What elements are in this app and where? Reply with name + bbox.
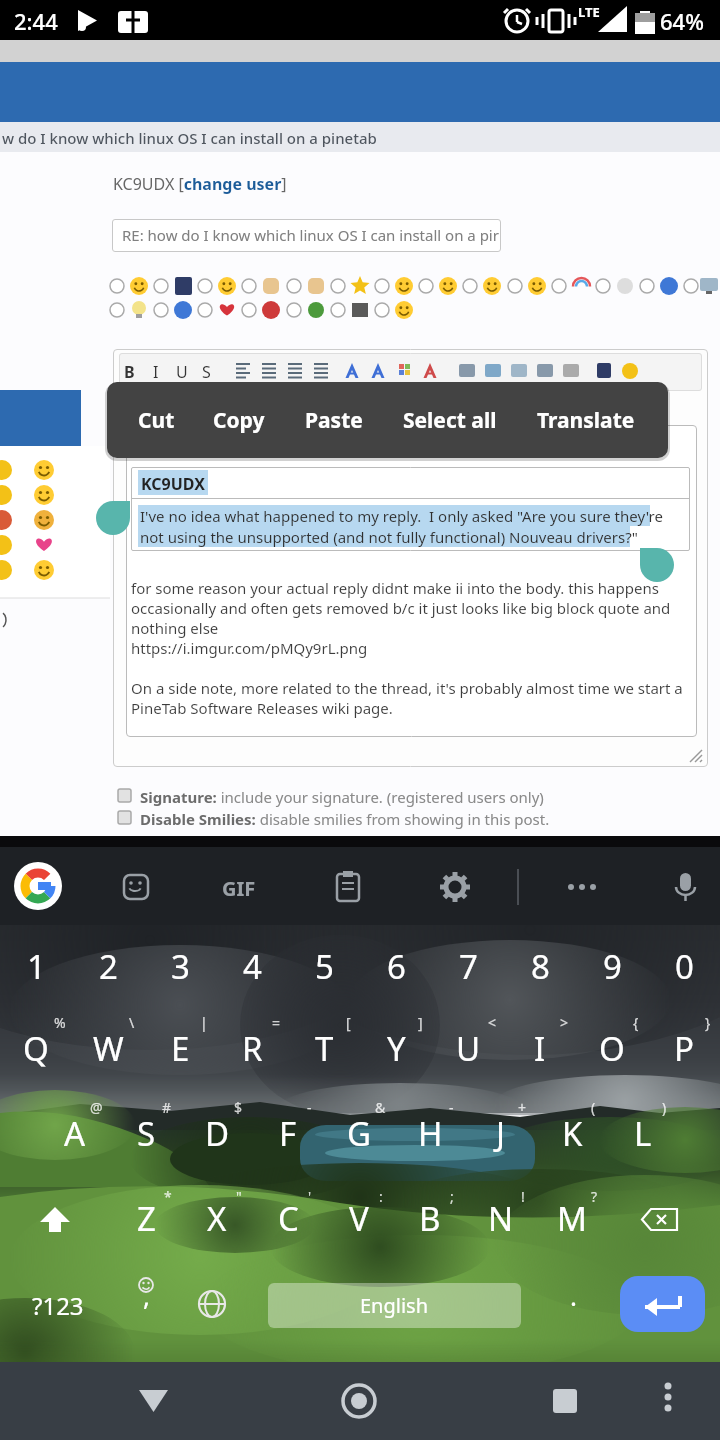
staticText: Q — [23, 1026, 49, 1071]
button[interactable]: Z — [110, 1192, 182, 1244]
staticText: Select all — [403, 406, 497, 435]
button[interactable]: D — [181, 1107, 253, 1159]
button[interactable]: - — [415, 1081, 487, 1133]
staticText: P — [674, 1026, 694, 1071]
button[interactable]: RE: how do I know which linux OS I can i… — [112, 219, 501, 252]
button[interactable]: @ — [60, 1081, 132, 1133]
button[interactable]: N — [465, 1192, 537, 1244]
button[interactable]: 7 — [432, 940, 504, 992]
staticText: KC9UDX [change user] — [113, 173, 287, 195]
staticText: Cut — [138, 406, 175, 435]
button[interactable]: Paste — [305, 406, 363, 435]
button[interactable]: English — [268, 1283, 521, 1328]
button[interactable]: % — [24, 996, 96, 1048]
button[interactable]: : — [345, 1170, 417, 1222]
button[interactable]: H — [394, 1107, 466, 1159]
button[interactable]: & — [344, 1081, 416, 1133]
button[interactable]: F — [252, 1107, 324, 1159]
staticText: not using the unsupported (and not fully… — [140, 527, 638, 547]
button[interactable]: 0 — [648, 940, 720, 992]
button[interactable]: M — [536, 1192, 608, 1244]
button[interactable]: \ — [96, 996, 168, 1048]
staticText: H — [418, 1111, 443, 1156]
button[interactable] — [331, 1373, 387, 1429]
button[interactable]: W — [72, 1022, 144, 1074]
button[interactable]: T — [288, 1022, 360, 1074]
staticText: Z — [137, 1196, 156, 1241]
button[interactable]: 1 — [0, 940, 72, 992]
button[interactable]: ? — [558, 1170, 630, 1222]
staticText: E — [171, 1026, 190, 1071]
button[interactable]: I — [504, 1022, 576, 1074]
staticText: " — [236, 1187, 242, 1206]
staticText: } — [705, 1013, 711, 1032]
button[interactable] — [125, 1376, 181, 1426]
button[interactable]: " — [203, 1170, 275, 1222]
staticText: I — [153, 361, 159, 383]
button[interactable]: Copy — [213, 406, 265, 435]
button[interactable]: ; — [416, 1170, 488, 1222]
button[interactable]: , — [110, 1269, 182, 1321]
button[interactable]: B — [394, 1192, 466, 1244]
button[interactable]: ! — [487, 1170, 559, 1222]
button[interactable]: 3 — [144, 940, 216, 992]
button[interactable]: [ — [312, 996, 384, 1048]
button[interactable]: } — [672, 996, 720, 1048]
button[interactable]: Translate — [537, 406, 635, 435]
button[interactable]: ) — [628, 1081, 700, 1133]
button[interactable]: X — [181, 1192, 253, 1244]
button[interactable]: 4 — [216, 940, 288, 992]
button[interactable]: ( — [557, 1081, 629, 1133]
button[interactable]: L — [607, 1107, 679, 1159]
button[interactable]: < — [456, 996, 528, 1048]
button[interactable]: 2 — [72, 940, 144, 992]
button[interactable]: ] — [384, 996, 456, 1048]
button[interactable]: Y — [360, 1022, 432, 1074]
button[interactable]: ?123 — [22, 1279, 94, 1331]
staticText: O — [599, 1026, 625, 1071]
button[interactable]: $ — [202, 1081, 274, 1133]
staticText: ' — [308, 1187, 312, 1206]
button[interactable]: E — [144, 1022, 216, 1074]
button[interactable]: Q — [0, 1022, 72, 1074]
button[interactable]: 8 — [504, 940, 576, 992]
staticText: LTE — [578, 3, 600, 21]
button[interactable] — [126, 425, 697, 737]
button[interactable]: S — [110, 1107, 182, 1159]
staticText: for some reason your actual reply didnt … — [131, 578, 683, 718]
button[interactable]: C — [252, 1192, 324, 1244]
button[interactable]: Cut — [138, 406, 175, 435]
staticText: M — [557, 1196, 587, 1241]
staticText: @ — [90, 1098, 103, 1117]
button[interactable]: K — [536, 1107, 608, 1159]
button[interactable]: 5 — [288, 940, 360, 992]
button[interactable]: { — [600, 996, 672, 1048]
button[interactable]: - — [273, 1081, 345, 1133]
button[interactable]: J — [465, 1107, 537, 1159]
staticText: G — [347, 1111, 372, 1156]
button[interactable]: Select all — [403, 406, 497, 435]
button[interactable]: # — [131, 1081, 203, 1133]
button[interactable]: = — [240, 996, 312, 1048]
button[interactable] — [640, 1373, 696, 1429]
button[interactable]: A — [39, 1107, 111, 1159]
button[interactable]: U — [432, 1022, 504, 1074]
button[interactable]: * — [132, 1170, 204, 1222]
button[interactable]: 9 — [576, 940, 648, 992]
button[interactable]: R — [216, 1022, 288, 1074]
staticText: A — [64, 1111, 86, 1156]
staticText: - — [449, 1098, 454, 1117]
button[interactable]: | — [168, 996, 240, 1048]
button[interactable]: V — [323, 1192, 395, 1244]
button[interactable]: . — [537, 1269, 609, 1321]
button[interactable]: O — [576, 1022, 648, 1074]
button[interactable]: G — [323, 1107, 395, 1159]
button[interactable]: ' — [274, 1170, 346, 1222]
button[interactable]: P — [648, 1022, 720, 1074]
button[interactable]: 6 — [360, 940, 432, 992]
button[interactable]: > — [528, 996, 600, 1048]
button[interactable] — [620, 1276, 705, 1332]
button[interactable]: + — [486, 1081, 558, 1133]
staticText: 4 — [243, 944, 262, 989]
button[interactable] — [537, 1373, 593, 1429]
